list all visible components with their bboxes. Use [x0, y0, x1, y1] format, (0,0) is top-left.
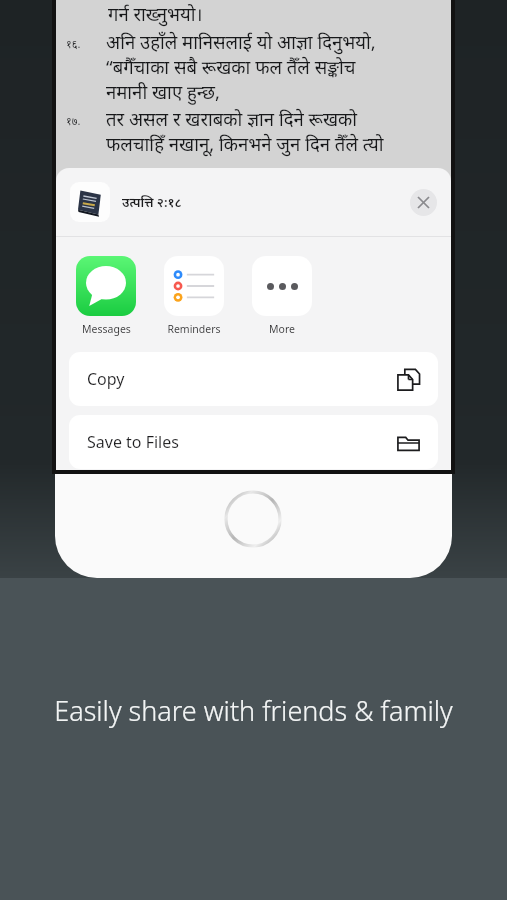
staticText: अनि उहाँले मानिसलाई यो आज्ञा दिनुभयो, [106, 29, 376, 54]
button[interactable]: Reminders [164, 256, 224, 336]
staticText: फलचाहिँ नखानू, किनभने जुन दिन तैँले त्यो [106, 131, 384, 156]
staticText: Copy [87, 368, 125, 390]
staticText: “बगैँचाका सबै रूखका फल तैँले सङ्कोच [106, 54, 356, 79]
staticText: Save to Files [87, 431, 179, 453]
staticText: नमानी खाए हुन्छ, [106, 79, 220, 104]
staticText: Messages [82, 322, 131, 336]
button[interactable]: Close [410, 189, 437, 216]
staticText: Reminders [167, 322, 221, 336]
staticText: १७. [66, 113, 106, 128]
button[interactable]: Messages [76, 256, 136, 336]
staticText: More [269, 322, 295, 336]
button[interactable]: Copy [69, 352, 438, 406]
staticText: गर्न राख्नुभयो। [108, 1, 203, 26]
button[interactable]: More [252, 256, 312, 336]
staticText: १६. [66, 36, 106, 51]
staticText: उत्पत्ति २:१८ [122, 193, 182, 211]
button[interactable]: Home [224, 490, 282, 548]
staticText: तर असल र खराबको ज्ञान दिने रूखको [106, 106, 358, 131]
staticText: Easily share with friends & family [54, 692, 453, 729]
button[interactable]: Save to Files [69, 415, 438, 469]
